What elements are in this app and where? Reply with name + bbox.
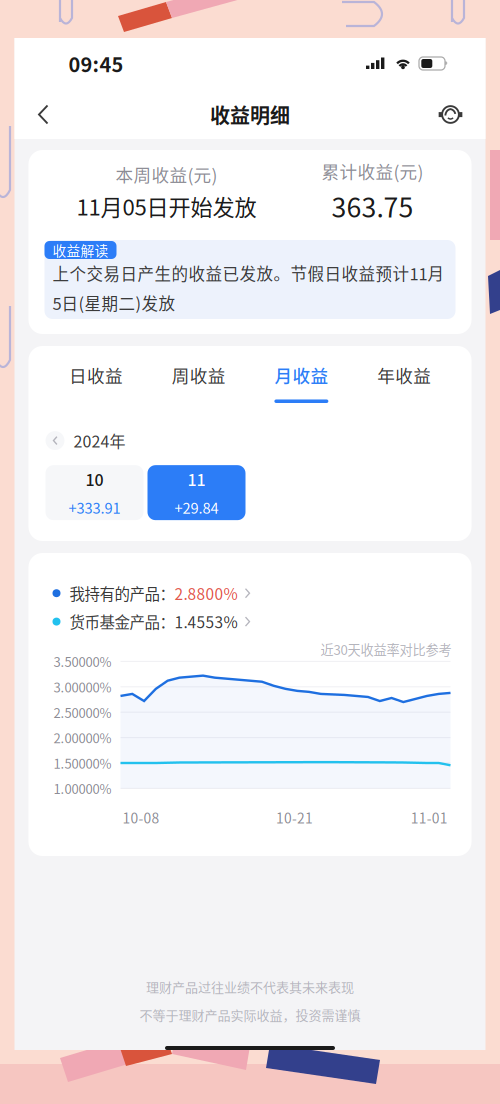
button[interactable]: 日收益 [44, 355, 147, 410]
staticText: 日收益 [69, 362, 123, 387]
staticText: 月收益 [274, 362, 328, 387]
button[interactable]: Back [24, 91, 62, 137]
staticText: 2.8800% [174, 582, 237, 604]
staticText: 09:45 [68, 49, 123, 78]
staticText: +333.91 [68, 497, 120, 518]
button[interactable]: 货币基金产品： [28, 604, 471, 633]
button[interactable]: 10 [45, 465, 143, 520]
staticText: 2024年 [73, 429, 125, 452]
button[interactable]: 我持有的产品： [28, 553, 471, 604]
staticText: 货币基金产品： [69, 610, 174, 633]
staticText: 我持有的产品： [69, 582, 174, 604]
staticText: 理财产品过往业绩不代表其未来表现 [146, 977, 354, 996]
staticText: 本周收益(元) [115, 161, 217, 187]
staticText: 收益解读 [52, 240, 108, 260]
button[interactable]: Previous year [45, 430, 64, 451]
staticText: +29.84 [174, 497, 218, 518]
staticText: 10-21 [276, 807, 313, 827]
button[interactable]: 月收益 [250, 355, 353, 410]
staticText: 累计收益(元) [321, 158, 423, 183]
staticText: 不等于理财产品实际收益，投资需谨慎 [139, 1005, 360, 1024]
staticText: 收益明细 [210, 100, 290, 129]
staticText: 5日(星期二)发放 [52, 291, 175, 315]
staticText: 年收益 [377, 362, 431, 387]
staticText: 2.00000% [53, 728, 111, 747]
staticText: 3.00000% [53, 677, 111, 696]
staticText: 11 [187, 467, 205, 491]
staticText: 周收益 [172, 362, 226, 387]
staticText: 363.75 [331, 186, 413, 225]
button[interactable]: 11 [147, 465, 245, 520]
staticText: 3.50000% [53, 652, 111, 671]
button[interactable]: Customer service [428, 91, 472, 137]
staticText: 11月05日开始发放 [76, 190, 256, 222]
staticText: 1.4553% [174, 610, 237, 633]
staticText: 1.50000% [53, 753, 111, 772]
staticText: 10-08 [122, 807, 159, 827]
staticText: 上个交易日产生的收益已发放。节假日收益预计11月 [52, 261, 444, 285]
button[interactable]: 年收益 [353, 355, 456, 410]
staticText: 近30天收益率对比参考 [320, 640, 451, 659]
staticText: 10 [85, 467, 103, 491]
button[interactable]: 周收益 [147, 355, 250, 410]
staticText: 1.00000% [53, 779, 111, 798]
staticText: 11-01 [411, 807, 448, 827]
staticText: 2.50000% [53, 703, 111, 722]
